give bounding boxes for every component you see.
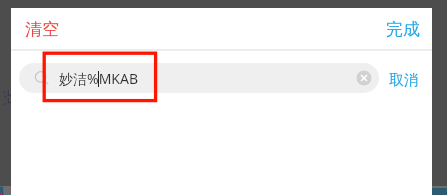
- staticText: 妙洁%MKAB: [59, 69, 139, 88]
- button[interactable]: 妙洁%MKAB: [19, 63, 379, 93]
- button[interactable]: 完成: [380, 13, 426, 46]
- staticText: 清空: [25, 19, 59, 40]
- staticText: 取消: [389, 71, 419, 90]
- button[interactable]: 清空: [19, 13, 65, 46]
- staticText: 完成: [386, 19, 420, 40]
- button[interactable]: 取消: [383, 66, 425, 95]
- button[interactable]: Clear text: [356, 70, 372, 86]
